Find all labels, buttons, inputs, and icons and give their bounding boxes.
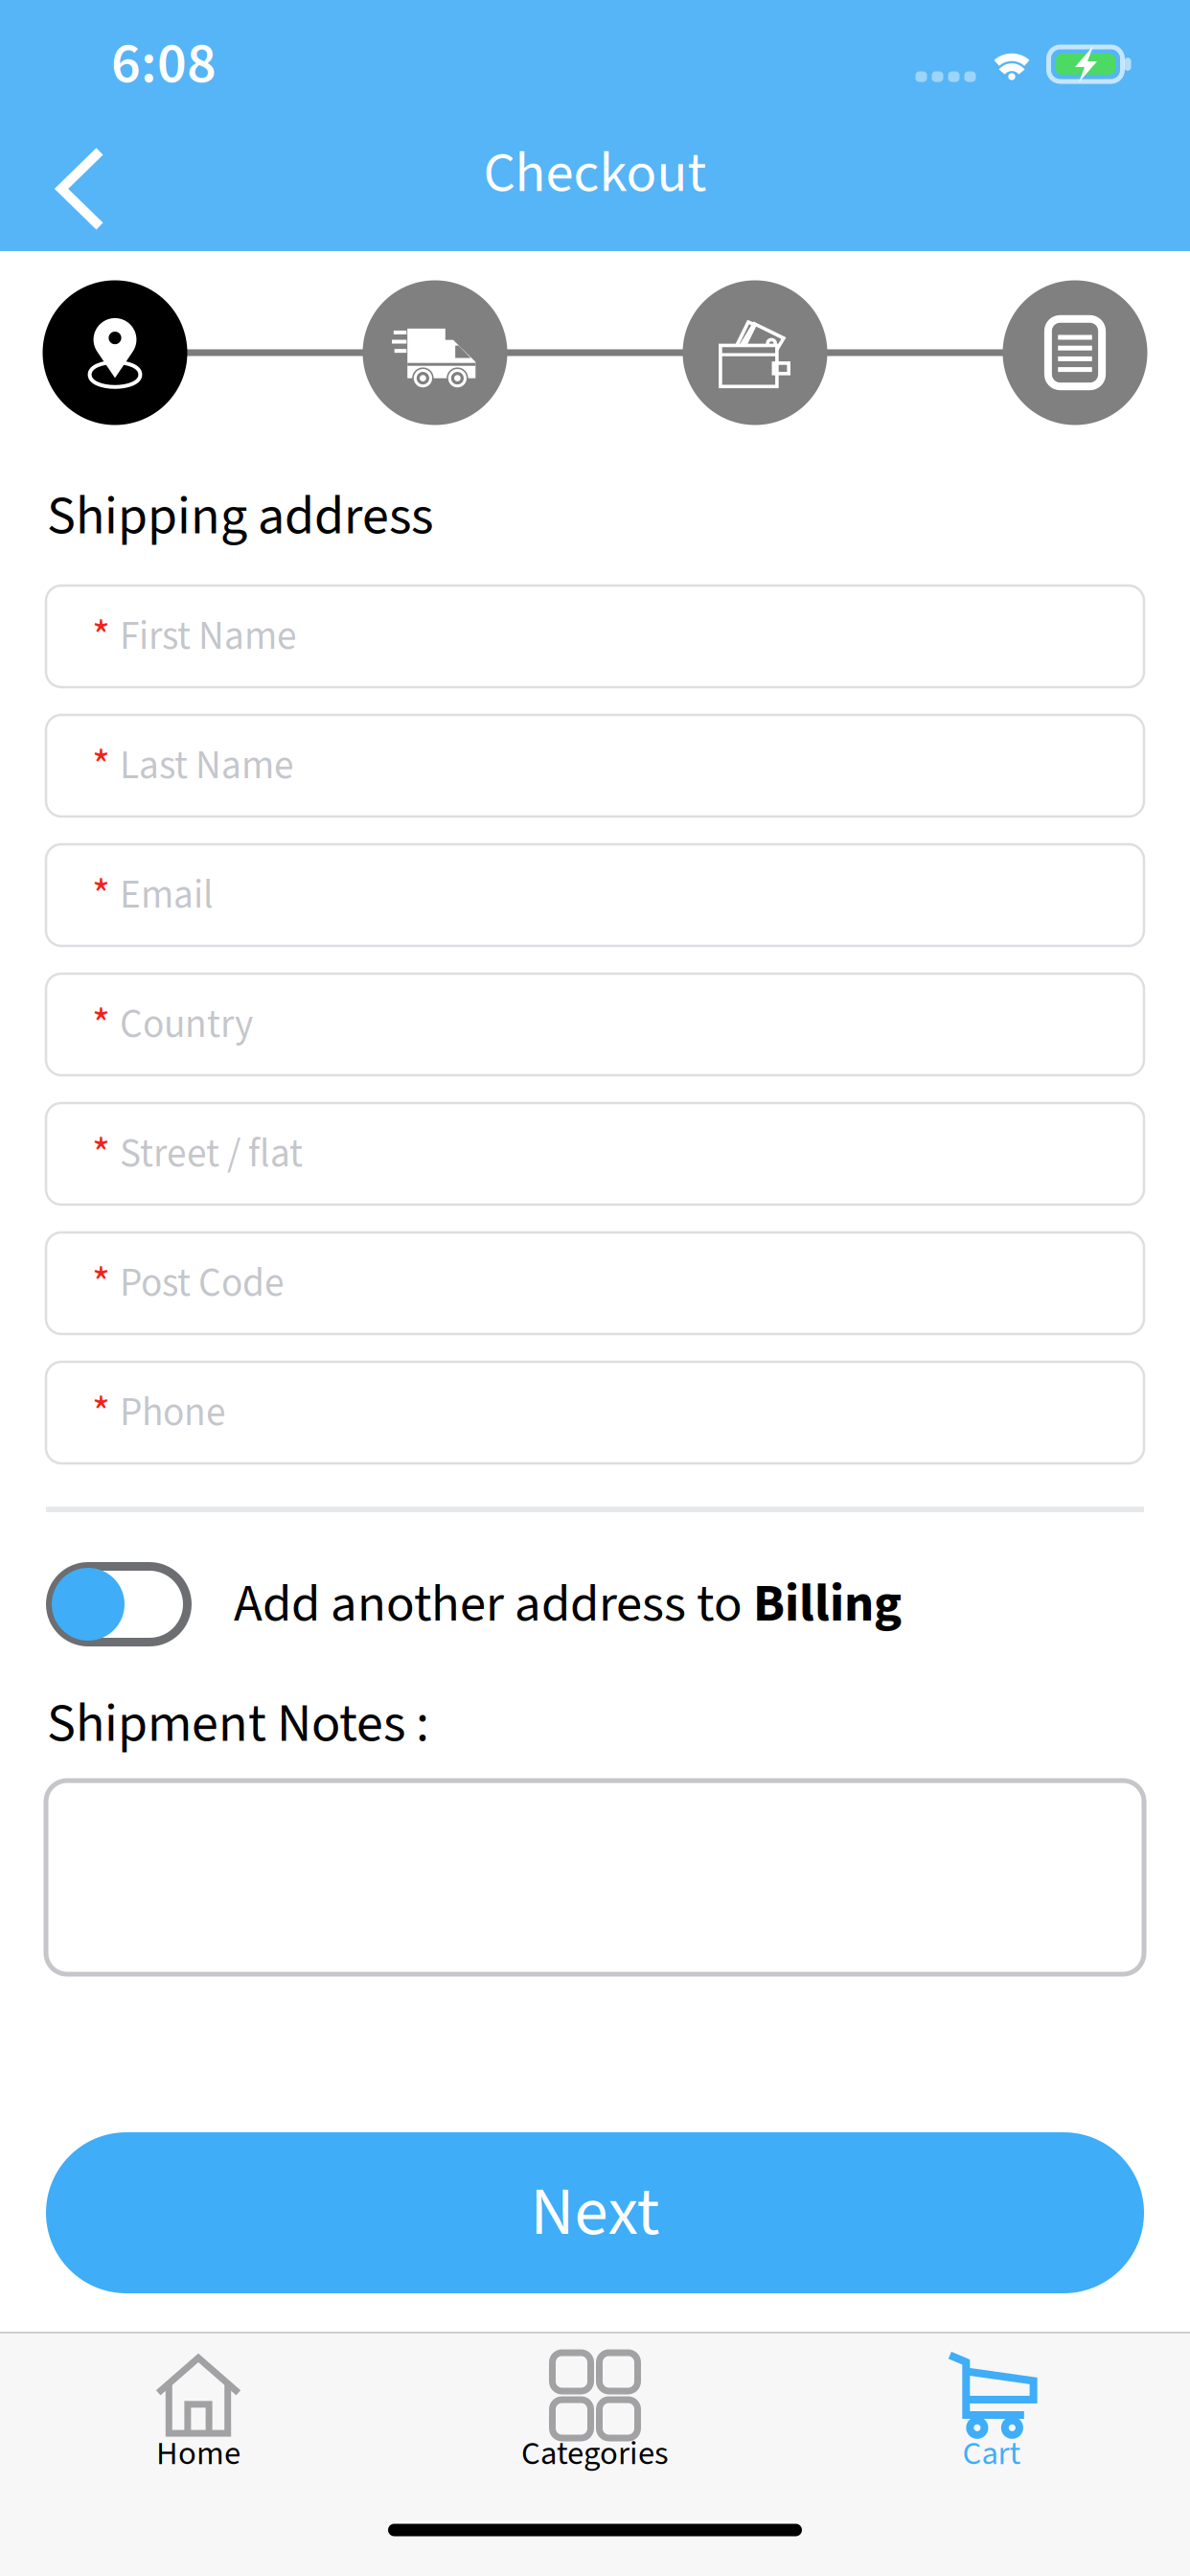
staticText: Post Code	[120, 1255, 285, 1311]
staticText: Add another address to	[234, 1567, 753, 1642]
staticText: Last Name	[120, 738, 294, 794]
button[interactable]: Address step	[43, 280, 187, 425]
button[interactable]: *	[46, 1232, 1144, 1334]
button[interactable]: *	[46, 715, 1144, 816]
staticText: Country	[120, 996, 253, 1053]
staticText: Categories	[521, 2430, 669, 2477]
button[interactable]: Delivery step	[363, 280, 507, 425]
staticText: *	[92, 735, 110, 797]
button[interactable]: Next	[46, 2132, 1144, 2293]
staticText: *	[92, 994, 110, 1055]
staticText: *	[92, 605, 110, 667]
button[interactable]: Summary step	[1003, 280, 1147, 425]
staticText: Shipment Notes :	[47, 1686, 429, 1762]
button[interactable]: Payment step	[683, 280, 827, 425]
staticText: *	[92, 1123, 110, 1185]
staticText: First Name	[120, 608, 297, 665]
staticText: Next	[530, 2165, 660, 2261]
staticText: *	[92, 1252, 110, 1314]
staticText: *	[92, 864, 110, 926]
staticText: Home	[156, 2430, 240, 2477]
button[interactable]: *	[46, 974, 1144, 1075]
staticText: Email	[120, 867, 214, 923]
button[interactable]: Home	[0, 2334, 397, 2477]
staticText: 6:08	[111, 23, 217, 105]
button[interactable]: Categories	[397, 2334, 793, 2477]
staticText: Street / flat	[120, 1126, 303, 1182]
button[interactable]: *	[46, 844, 1144, 946]
button[interactable]: Back	[9, 131, 152, 246]
button[interactable]: Cart	[793, 2334, 1190, 2477]
staticText: Phone	[120, 1384, 226, 1441]
button[interactable]: *	[46, 586, 1144, 687]
staticText: *	[92, 1382, 110, 1444]
staticText: Billing	[753, 1567, 902, 1642]
button[interactable]: Add another address to	[46, 1560, 1100, 1648]
staticText: Cart	[962, 2430, 1021, 2477]
staticText: Checkout	[483, 133, 707, 213]
staticText: Shipping address	[47, 478, 433, 555]
button[interactable]: *	[46, 1103, 1144, 1205]
button[interactable]: *	[46, 1362, 1144, 1463]
